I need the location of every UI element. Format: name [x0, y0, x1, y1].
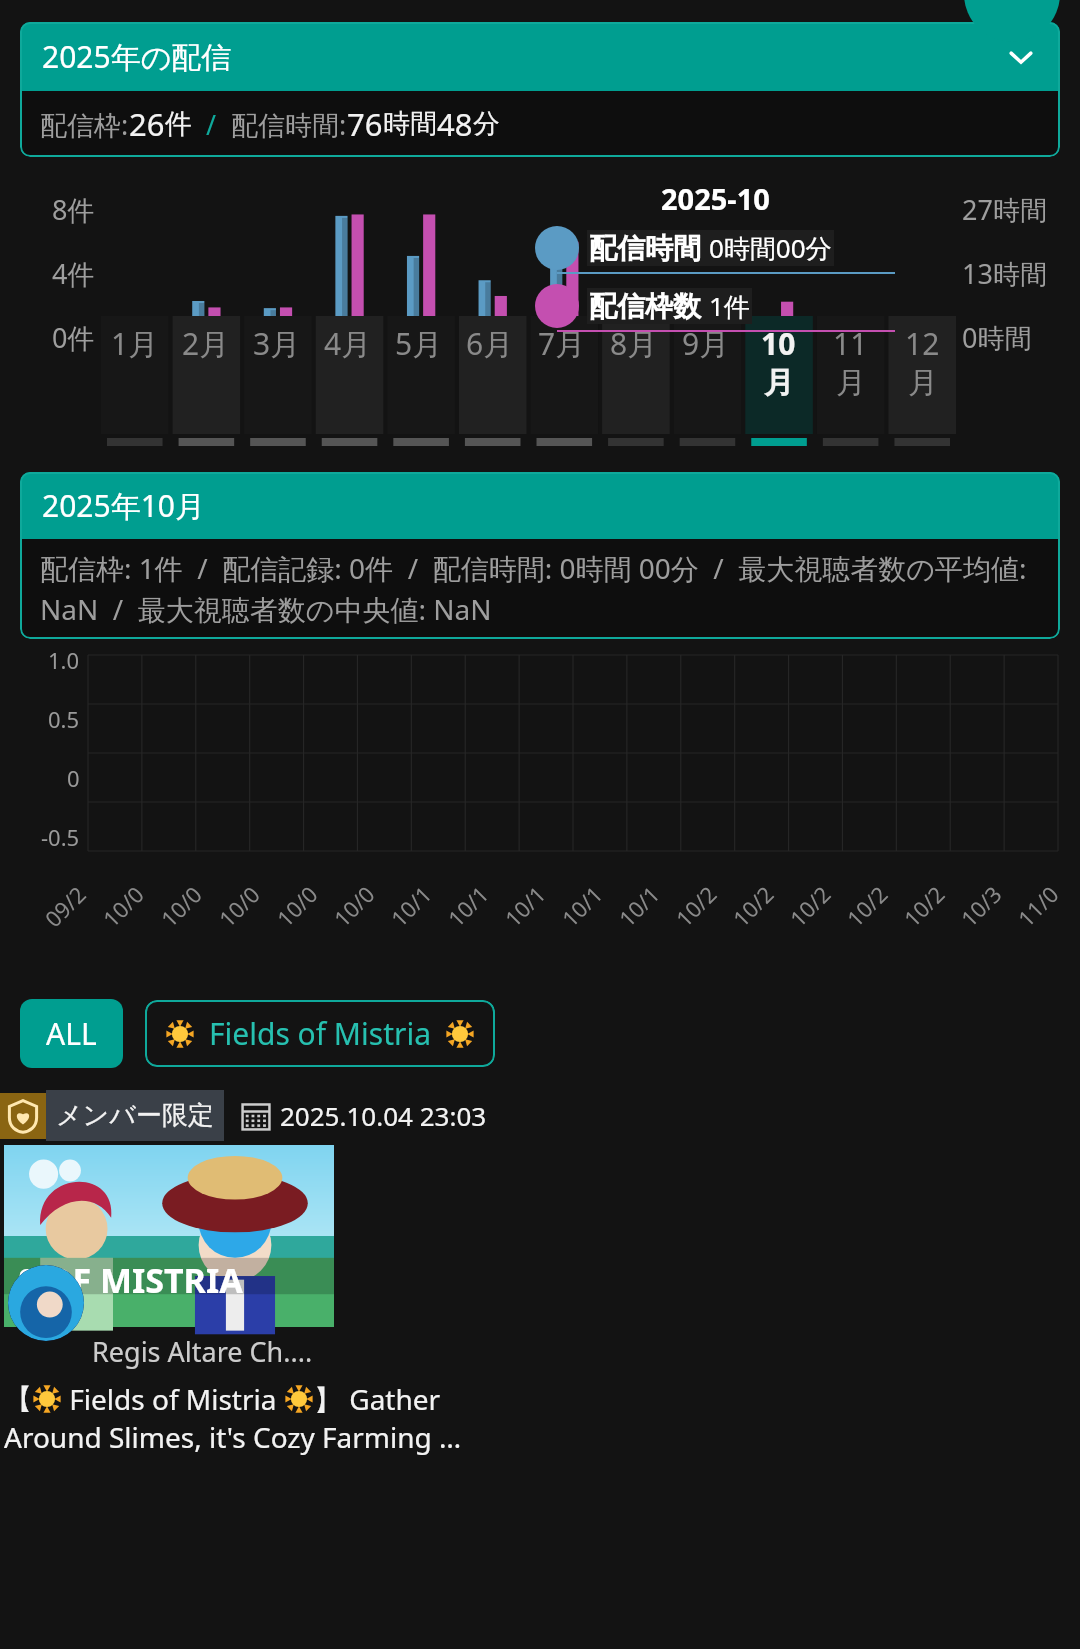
staticText: 10/13 [441, 871, 502, 933]
staticText: 10/11 [384, 871, 445, 933]
staticText: 2025年10月 [42, 485, 205, 526]
staticText: 配信時間 [589, 231, 701, 266]
staticText: 13時間 [962, 255, 1047, 292]
button[interactable]: 6月 [454, 171, 526, 456]
staticText: 10/27 [840, 871, 901, 933]
button[interactable]: 2月 [170, 171, 241, 456]
staticText: 0時間00分 [709, 230, 832, 266]
button[interactable]: 8月 [598, 171, 670, 456]
staticText: 月 [836, 364, 866, 402]
staticText: 配信時間: [231, 106, 347, 143]
staticText: 7月 [538, 323, 586, 364]
staticText: 10/31 [954, 871, 1015, 933]
staticText: 1.0 [48, 645, 80, 675]
staticText: 4月 [324, 323, 372, 364]
staticText: / [192, 106, 231, 143]
button[interactable]: Fields of Mistria [145, 1000, 495, 1067]
staticText: 26 [129, 103, 165, 145]
staticText: 76 [347, 103, 383, 145]
staticText: 11/02 [1011, 871, 1072, 933]
staticText: 月 [764, 364, 794, 402]
staticText: 4件 [52, 255, 95, 292]
staticText: 配信枠数 [589, 289, 701, 324]
staticText: 10/29 [897, 871, 958, 933]
other: Collapse [1004, 40, 1038, 74]
button[interactable]: 2025年10月 [20, 472, 1060, 539]
staticText: 0 [67, 763, 80, 793]
staticText: 9月 [682, 323, 730, 364]
staticText: 2025年の配信 [42, 36, 232, 77]
staticText: 10 [761, 323, 796, 364]
button[interactable]: メンバー限定 [0, 1090, 1080, 1456]
staticText: 09/29 [38, 871, 100, 933]
staticText: 3月 [253, 323, 301, 364]
staticText: 11 [833, 323, 868, 364]
staticText: 12 [905, 323, 940, 364]
staticText: 2025.10.04 23:03 [280, 1098, 487, 1133]
staticText: メンバー限定 [56, 1099, 214, 1132]
staticText: 27時間 [962, 191, 1047, 228]
button[interactable]: 4月 [312, 171, 383, 456]
staticText: 時間 [383, 107, 437, 141]
button[interactable]: 2025年の配信 [20, 22, 1060, 91]
staticText: 5月 [395, 323, 443, 364]
staticText: 10/23 [726, 871, 787, 933]
staticText: 配信枠: 1件 / 配信記録: 0件 / 配信時間: 0時間 00分 / 最大視… [40, 549, 1040, 629]
staticText: 10/21 [669, 871, 730, 933]
staticText: 件 [165, 107, 192, 141]
staticText: 10/09 [327, 871, 388, 933]
staticText: 0件 [52, 319, 95, 356]
staticText: 2025-10 [661, 179, 770, 218]
button[interactable]: 12 [886, 171, 958, 456]
staticText: 分 [473, 107, 500, 141]
button[interactable]: 7月 [526, 171, 598, 456]
staticText: Fields of Mistria [209, 1013, 431, 1054]
staticText: 48 [437, 103, 473, 145]
staticText: 0.5 [48, 704, 80, 734]
staticText: -0.5 [41, 822, 80, 852]
staticText: 【 [4, 1382, 32, 1417]
staticText: 10/15 [498, 871, 559, 933]
staticText: 10/17 [555, 871, 616, 933]
staticText: Around Slimes, it's Cozy Farming … [4, 1418, 462, 1456]
staticText: 10/05 [212, 871, 274, 933]
staticText: ALL [46, 1013, 97, 1054]
button[interactable]: 11 [814, 171, 886, 456]
button[interactable]: 3月 [241, 171, 312, 456]
button[interactable]: 5月 [383, 171, 454, 456]
button[interactable]: ALL [20, 999, 123, 1068]
staticText: 2月 [182, 323, 230, 364]
staticText: 月 [908, 364, 938, 402]
staticText: 0時間 [962, 319, 1032, 356]
staticText: 10/19 [612, 871, 673, 933]
staticText: Fields of Mistria [62, 1380, 284, 1418]
button[interactable]: 10 [742, 171, 814, 456]
staticText: 10/03 [154, 871, 216, 933]
staticText: 10/01 [96, 871, 158, 933]
button[interactable]: 9月 [670, 171, 742, 456]
staticText: 】 Gather [314, 1380, 441, 1418]
button[interactable]: 1月 [99, 171, 170, 456]
staticText: Regis Altare Ch.... [92, 1333, 313, 1370]
staticText: 8件 [52, 191, 95, 228]
staticText: 配信枠: [40, 106, 129, 143]
staticText: 10/07 [270, 871, 331, 933]
staticText: 1件 [709, 288, 750, 324]
staticText: 8月 [610, 323, 658, 364]
staticText: 1月 [111, 323, 159, 364]
staticText: -1.0 [41, 881, 80, 889]
staticText: 6月 [466, 323, 514, 364]
staticText: 10/25 [783, 871, 844, 933]
staticText: S OF MISTRIA [18, 1257, 243, 1303]
